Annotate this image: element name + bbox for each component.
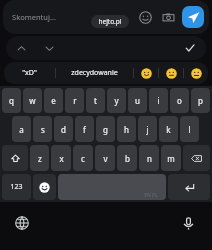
staticText: r — [73, 95, 77, 106]
staticText: g — [103, 124, 108, 135]
button[interactable]: v — [95, 145, 115, 171]
staticText: k — [166, 124, 171, 135]
button[interactable]: d — [54, 116, 73, 142]
button[interactable]: m — [161, 145, 181, 171]
button[interactable]: zdecydowanie — [56, 62, 133, 84]
button[interactable]: i — [149, 88, 168, 113]
button[interactable]: g — [96, 116, 115, 142]
staticText: c — [81, 153, 85, 164]
staticText: h — [124, 124, 129, 135]
staticText: o — [177, 95, 182, 106]
button[interactable]: Backspace — [183, 145, 210, 171]
staticText: f — [83, 124, 86, 135]
staticText: a — [19, 124, 24, 135]
button[interactable]: Enter — [168, 174, 210, 200]
button[interactable]: Done — [182, 40, 198, 56]
staticText: t — [94, 95, 97, 106]
button[interactable]: Shift — [2, 145, 28, 171]
button[interactable]: b — [117, 145, 137, 171]
button[interactable]: Previous — [13, 40, 29, 56]
button[interactable]: c — [73, 145, 93, 171]
button[interactable]: Emoji keyboard — [33, 174, 56, 200]
button[interactable]: hejto.pl — [91, 15, 129, 28]
button[interactable]: Emoji suggestion 1 — [134, 62, 158, 84]
staticText: n — [147, 153, 152, 164]
button[interactable]: a — [12, 116, 31, 142]
staticText: "xD" — [22, 68, 37, 78]
staticText: 123 — [10, 182, 23, 192]
button[interactable]: Emoji suggestion 3 — [184, 62, 208, 84]
staticText: u — [135, 95, 140, 106]
button[interactable]: Change language — [12, 213, 32, 233]
button[interactable]: u — [128, 88, 147, 113]
button[interactable]: Camera — [159, 8, 177, 26]
button[interactable]: n — [139, 145, 159, 171]
button[interactable]: "xD" — [4, 62, 55, 84]
button[interactable]: z — [30, 145, 49, 171]
staticText: m — [167, 153, 175, 164]
button[interactable]: p — [191, 88, 210, 113]
button[interactable]: Voice input — [178, 213, 198, 233]
button[interactable]: e — [44, 88, 63, 113]
staticText: s — [41, 124, 45, 135]
button[interactable]: Emoji suggestion 2 — [159, 62, 183, 84]
button[interactable]: Skomentuj... — [12, 12, 56, 22]
button[interactable]: x — [51, 145, 71, 171]
button[interactable]: y — [107, 88, 126, 113]
button[interactable]: f — [75, 116, 94, 142]
staticText: z — [38, 153, 42, 164]
staticText: d — [61, 124, 66, 135]
staticText: hejto.pl — [98, 17, 122, 26]
button[interactable]: Next — [41, 40, 57, 56]
staticText: w — [29, 95, 36, 106]
staticText: l — [188, 124, 191, 135]
staticText: e — [51, 95, 56, 106]
button[interactable]: q — [2, 88, 21, 113]
staticText: y — [114, 95, 119, 106]
button[interactable]: w — [23, 88, 42, 113]
button[interactable]: o — [170, 88, 189, 113]
staticText: i — [157, 95, 160, 106]
button[interactable]: k — [159, 116, 178, 142]
button[interactable]: Send — [182, 6, 204, 28]
staticText: p — [198, 95, 203, 106]
staticText: b — [125, 153, 130, 164]
button[interactable]: j — [138, 116, 157, 142]
button[interactable]: l — [180, 116, 199, 142]
staticText: EN PL — [144, 192, 158, 199]
button[interactable]: 123 — [2, 174, 31, 200]
staticText: q — [9, 95, 14, 106]
button[interactable]: s — [33, 116, 52, 142]
button[interactable]: t — [86, 88, 105, 113]
button[interactable]: h — [117, 116, 136, 142]
staticText: zdecydowanie — [71, 68, 118, 78]
staticText: v — [103, 153, 108, 164]
staticText: j — [146, 124, 149, 135]
button[interactable]: Insert emoji — [136, 8, 154, 26]
staticText: x — [59, 153, 64, 164]
button[interactable]: r — [65, 88, 84, 113]
